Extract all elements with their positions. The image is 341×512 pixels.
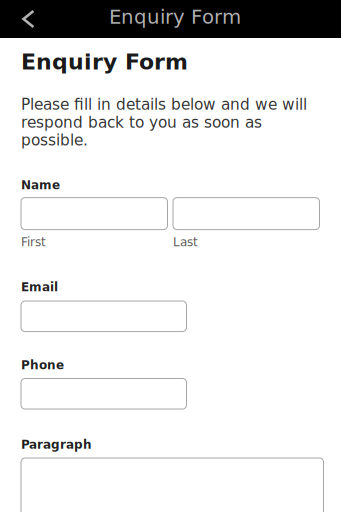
staticText: Last — [173, 235, 198, 249]
staticText: Please fill in details below and we will… — [21, 96, 307, 149]
button[interactable]: Back — [0, 0, 47, 38]
staticText: First — [21, 235, 46, 249]
staticText: Enquiry Form — [109, 5, 241, 28]
button[interactable]: First name — [21, 198, 167, 230]
staticText: Paragraph — [21, 437, 92, 451]
staticText: Name — [21, 178, 60, 192]
staticText: Phone — [21, 358, 64, 372]
button[interactable]: Paragraph — [21, 458, 323, 512]
button[interactable]: Phone — [21, 378, 186, 409]
staticText: Email — [21, 280, 58, 294]
button[interactable]: Email — [21, 301, 186, 332]
staticText: Enquiry Form — [21, 49, 188, 75]
button[interactable]: Last name — [173, 198, 319, 230]
